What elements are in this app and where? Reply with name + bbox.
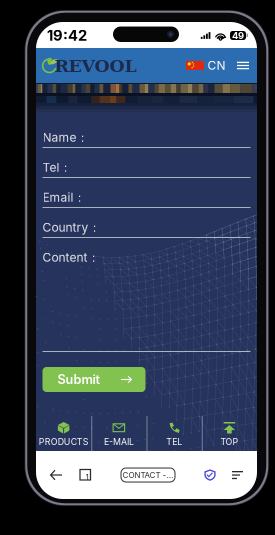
staticText: 19:42 (47, 27, 87, 44)
staticText: Tel： (42, 160, 71, 175)
staticText: Name： (42, 130, 88, 145)
button[interactable]: TEL (146, 410, 202, 451)
button[interactable]: TOP (202, 410, 257, 451)
staticText: TEL (166, 436, 182, 447)
button[interactable]: Email： (42, 178, 250, 208)
staticText: Country： (42, 220, 100, 235)
staticText: 49 (232, 30, 244, 41)
button[interactable]: Menu (225, 54, 257, 77)
staticText: Content： (42, 250, 99, 265)
button[interactable]: Name： (42, 118, 250, 148)
button[interactable]: Submit (42, 367, 145, 392)
staticText: Submit (57, 372, 99, 387)
button[interactable]: Content： (42, 238, 250, 352)
button[interactable]: Tabs (71, 461, 100, 489)
staticText: PRODUCTS (39, 436, 89, 447)
button[interactable]: Language CN (186, 49, 225, 82)
staticText: TOP (220, 436, 238, 447)
button[interactable]: Tel： (42, 148, 250, 178)
staticText: Email： (42, 190, 85, 205)
button[interactable]: Back (42, 461, 71, 488)
staticText: CN (207, 58, 225, 73)
staticText: 1 (85, 472, 88, 482)
button[interactable]: More (224, 463, 251, 487)
button[interactable]: CONTACT -… (121, 468, 175, 482)
button[interactable]: REVOOL home (36, 47, 140, 84)
staticText: REVOOL (54, 56, 136, 76)
button[interactable]: Country： (42, 208, 250, 238)
button[interactable]: PRODUCTS (36, 410, 91, 451)
staticText: CONTACT -… (122, 470, 173, 480)
staticText: E-MAIL (104, 436, 134, 447)
button[interactable]: Privacy shield (196, 461, 224, 489)
button[interactable]: E-MAIL (91, 410, 146, 451)
